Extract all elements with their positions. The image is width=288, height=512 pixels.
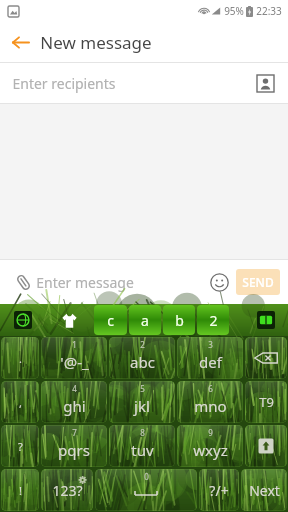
- button[interactable]: 2: [197, 305, 229, 335]
- button[interactable]: Attach: [10, 269, 36, 295]
- button[interactable]: ?/+: [199, 469, 239, 511]
- staticText: wxyz: [193, 440, 228, 460]
- button[interactable]: 2: [109, 337, 175, 379]
- staticText: def: [199, 352, 222, 372]
- staticText: 6: [208, 383, 213, 394]
- button[interactable]: ?: [1, 425, 39, 467]
- staticText: jkl: [134, 396, 150, 416]
- button[interactable]: T9: [245, 381, 287, 423]
- button[interactable]: c: [94, 305, 127, 335]
- button[interactable]: Space: [95, 469, 197, 511]
- staticText: ?: [18, 439, 23, 454]
- button[interactable]: Shift: [245, 425, 287, 467]
- button[interactable]: Next: [241, 469, 287, 511]
- button[interactable]: Add recipient from contacts: [254, 72, 276, 94]
- staticText: 95%: [224, 4, 244, 18]
- button[interactable]: Insert emoticon: [206, 269, 232, 295]
- staticText: ,: [19, 395, 22, 410]
- button[interactable]: 5: [109, 381, 175, 423]
- staticText: 7: [72, 427, 77, 438]
- button[interactable]: Change language: [0, 304, 46, 336]
- button[interactable]: 8: [109, 425, 175, 467]
- staticText: SEND: [242, 274, 274, 290]
- staticText: 5: [140, 383, 145, 394]
- staticText: tuv: [131, 440, 154, 460]
- staticText: T9: [259, 393, 274, 411]
- staticText: 3: [208, 339, 213, 350]
- staticText: Next: [249, 481, 280, 500]
- staticText: a: [141, 311, 149, 330]
- button[interactable]: Keyboard theme: [46, 304, 93, 336]
- button[interactable]: Enter message: [36, 273, 206, 292]
- staticText: pqrs: [58, 440, 90, 460]
- button[interactable]: 9: [177, 425, 243, 467]
- staticText: '@-_: [60, 352, 89, 372]
- staticText: !: [19, 483, 22, 498]
- staticText: 1: [72, 339, 77, 350]
- button[interactable]: Delete: [245, 337, 287, 379]
- button[interactable]: 3: [177, 337, 243, 379]
- staticText: abc: [130, 352, 155, 372]
- button[interactable]: 4: [41, 381, 107, 423]
- button[interactable]: 7: [41, 425, 107, 467]
- staticText: 9: [208, 427, 213, 438]
- button[interactable]: a: [129, 305, 161, 335]
- staticText: c: [107, 311, 114, 330]
- staticText: .: [19, 351, 22, 366]
- button[interactable]: .: [1, 337, 39, 379]
- staticText: 4: [72, 383, 77, 394]
- staticText: mno: [194, 396, 227, 416]
- staticText: Enter message: [36, 273, 134, 292]
- button[interactable]: SEND: [236, 269, 280, 295]
- button[interactable]: Keyboard settings: [244, 304, 288, 336]
- staticText: 2: [140, 339, 145, 350]
- button[interactable]: b: [163, 305, 195, 335]
- button[interactable]: ,: [1, 381, 39, 423]
- staticText: 0: [144, 471, 149, 482]
- staticText: b: [175, 311, 184, 330]
- staticText: ?/+: [209, 481, 229, 500]
- button[interactable]: Enter recipients: [12, 74, 254, 93]
- staticText: New message: [40, 31, 152, 54]
- button[interactable]: 123?: [41, 469, 93, 511]
- staticText: 8: [140, 427, 145, 438]
- staticText: ghi: [63, 396, 86, 416]
- staticText: 22:33: [256, 4, 282, 18]
- staticText: 123?: [52, 481, 83, 500]
- button[interactable]: 6: [177, 381, 243, 423]
- button[interactable]: !: [1, 469, 39, 511]
- button[interactable]: 1: [41, 337, 107, 379]
- staticText: Enter recipients: [12, 74, 116, 93]
- button[interactable]: Back: [0, 22, 40, 62]
- staticText: 2: [209, 311, 218, 330]
